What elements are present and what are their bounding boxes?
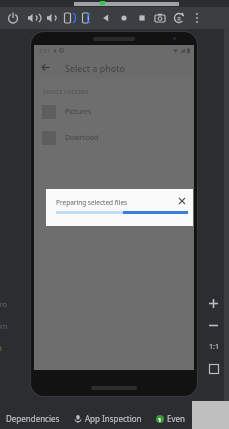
button[interactable]: Home — [117, 11, 131, 25]
button[interactable]: App Inspection — [74, 413, 142, 424]
button[interactable]: Rotate right — [80, 11, 94, 25]
button[interactable]: Power — [6, 11, 20, 25]
button[interactable]: 1:1 — [203, 336, 224, 358]
button[interactable]: Rotate left — [62, 11, 76, 25]
staticText: 7:51 — [39, 47, 50, 54]
button[interactable]: Download — [34, 130, 194, 146]
staticText: Even — [167, 413, 185, 424]
staticText: Dependencies — [6, 413, 60, 424]
button[interactable]: More — [190, 11, 204, 25]
staticText: App Inspection — [85, 413, 142, 424]
button[interactable]: Pictures — [34, 104, 194, 120]
button[interactable]: Volume up — [25, 11, 39, 25]
staticText: rn — [0, 322, 8, 332]
staticText: Preparing selected files — [56, 198, 128, 207]
button[interactable]: Dependencies — [6, 413, 60, 424]
button[interactable]: Volume down — [44, 11, 58, 25]
button[interactable]: Screenshot — [153, 11, 167, 25]
button[interactable]: Close — [176, 195, 188, 207]
staticText: Select a photo — [65, 62, 125, 74]
button[interactable]: Back — [99, 11, 113, 25]
button[interactable]: 1 — [156, 413, 185, 424]
staticText: DEVICE FOLDERS — [43, 89, 89, 96]
button[interactable]: Zoom to fit — [203, 358, 224, 380]
button[interactable]: Record — [172, 11, 186, 25]
button[interactable]: Zoom in — [203, 292, 224, 314]
button[interactable]: Overview — [135, 11, 149, 25]
staticText: Pictures — [65, 107, 92, 117]
staticText: Download — [65, 133, 99, 143]
staticText: ro — [0, 300, 7, 310]
staticText: 1:1 — [209, 342, 219, 352]
staticText: 1 — [158, 416, 162, 423]
staticText: i — [0, 344, 2, 354]
button[interactable]: Navigate up — [34, 56, 57, 79]
button[interactable]: Zoom out — [203, 314, 224, 336]
